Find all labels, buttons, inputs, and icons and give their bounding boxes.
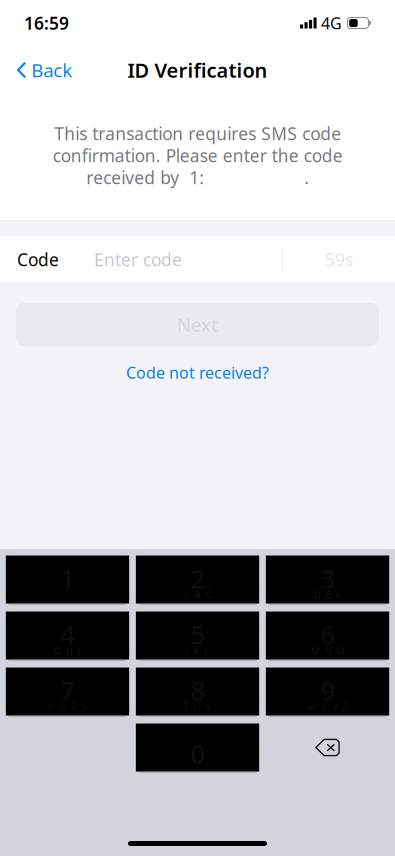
staticText: Back — [31, 58, 72, 82]
button[interactable]: 6 — [266, 611, 389, 659]
staticText: J K L — [185, 644, 209, 657]
button[interactable]: 4 — [6, 611, 129, 659]
staticText: Enter code — [94, 248, 182, 271]
button[interactable]: 3 — [266, 555, 389, 603]
staticText: 2 — [190, 561, 204, 595]
staticText: D E F — [314, 588, 341, 601]
staticText: Code — [17, 248, 59, 271]
staticText: T U V — [183, 700, 211, 713]
staticText: 3 — [320, 561, 334, 595]
button[interactable]: Delete — [266, 723, 389, 771]
button[interactable]: 8 — [136, 667, 259, 715]
staticText: 16:59 — [24, 11, 69, 34]
staticText: G H I — [54, 644, 81, 657]
button[interactable]: 2 — [136, 555, 259, 603]
button[interactable]: Back — [0, 48, 84, 92]
staticText: 4 — [60, 617, 74, 651]
staticText: W X Y Z — [307, 700, 347, 713]
button[interactable]: 9 — [266, 667, 389, 715]
button[interactable]: 7 — [6, 667, 129, 715]
staticText: 6 — [320, 617, 334, 651]
staticText: Code not received? — [126, 362, 269, 383]
button[interactable]: 1 — [6, 555, 129, 603]
staticText: 8 — [190, 673, 204, 707]
staticText: 59s — [325, 248, 353, 271]
staticText: A B C — [183, 588, 211, 601]
staticText: 9 — [320, 673, 334, 707]
button[interactable]: 0 — [136, 723, 259, 771]
button[interactable]: 5 — [136, 611, 259, 659]
button[interactable]: Code not received? — [114, 355, 281, 390]
staticText: M N O — [311, 644, 344, 657]
staticText: Next — [177, 312, 218, 337]
staticText: ID Verification — [127, 57, 267, 83]
staticText: This transaction requires SMS code confi… — [52, 122, 342, 189]
staticText: 5 — [190, 617, 204, 651]
staticText: P Q R S — [48, 700, 87, 713]
staticText: 1 — [60, 561, 74, 595]
staticText: 4G — [321, 12, 342, 34]
staticText: 0 — [190, 736, 204, 770]
staticText: 7 — [60, 673, 74, 707]
